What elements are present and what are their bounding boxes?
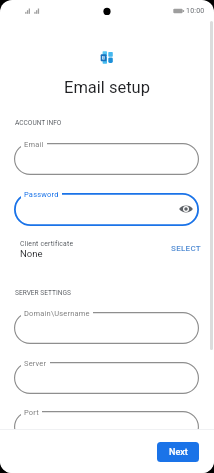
staticText: SERVER SETTINGS [15, 289, 71, 297]
button[interactable]: Server [14, 362, 199, 394]
staticText: Email setup [0, 78, 214, 97]
button[interactable]: Password [14, 193, 199, 226]
button[interactable]: Client certificate [0, 236, 214, 262]
staticText: Client certificate [20, 240, 74, 248]
button[interactable]: Next [157, 442, 199, 462]
staticText: Next [169, 447, 188, 458]
staticText: Server [24, 359, 47, 368]
staticText: Port [24, 408, 39, 417]
staticText: ACCOUNT INFO [15, 119, 62, 127]
staticText: SELECT [171, 244, 201, 253]
staticText: Domain\Username [24, 309, 90, 318]
button[interactable]: Domain\Username [14, 312, 199, 344]
staticText: Email [24, 140, 44, 149]
staticText: Password [24, 190, 59, 199]
button[interactable]: Port [14, 411, 199, 443]
staticText: None [20, 248, 43, 259]
staticText: 10:00 [186, 7, 205, 15]
button[interactable]: Email [14, 143, 199, 175]
other: Show password [179, 204, 193, 214]
